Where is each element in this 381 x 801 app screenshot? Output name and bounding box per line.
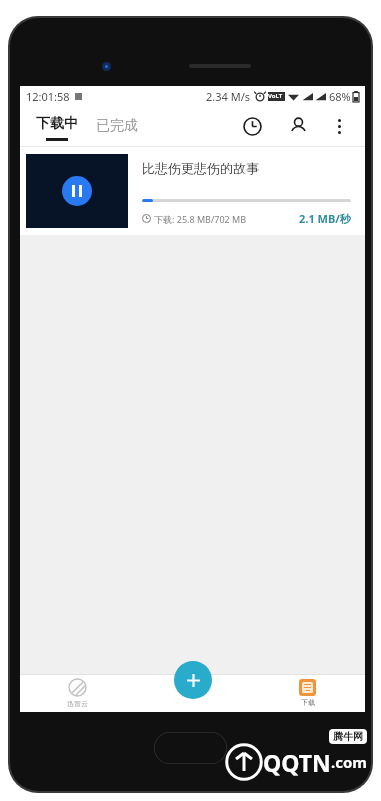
staticText: 2.34 M/s [206, 89, 251, 104]
staticText: 下载中 [36, 115, 78, 133]
button[interactable]: Pause [62, 176, 92, 206]
staticText: QQTN [263, 747, 331, 778]
button[interactable]: Pause [20, 147, 365, 235]
staticText: 68% [329, 89, 351, 104]
staticText: .com [331, 752, 367, 772]
staticText: 已完成 [96, 117, 138, 135]
button[interactable]: 下载中 [36, 106, 78, 146]
button[interactable]: Account [281, 109, 315, 143]
button[interactable]: History [235, 109, 269, 143]
button[interactable]: Add new download [174, 661, 212, 699]
button[interactable]: 下载 [250, 674, 365, 712]
staticText: 比悲伤更悲伤的故事 [142, 160, 259, 176]
staticText: 12:01:58 [26, 89, 70, 104]
staticText: 2.1 MB/秒 [299, 211, 351, 226]
staticText: 迅雷云 [67, 699, 88, 708]
staticText: 腾牛网 [333, 730, 363, 743]
button[interactable]: 已完成 [96, 106, 138, 146]
staticText: VoLTE [268, 92, 285, 101]
button[interactable]: More options [323, 110, 355, 142]
staticText: 下载 [301, 698, 315, 707]
button[interactable]: 迅雷云 [20, 674, 135, 712]
staticText: 下载: 25.8 MB/702 MB [154, 213, 247, 225]
